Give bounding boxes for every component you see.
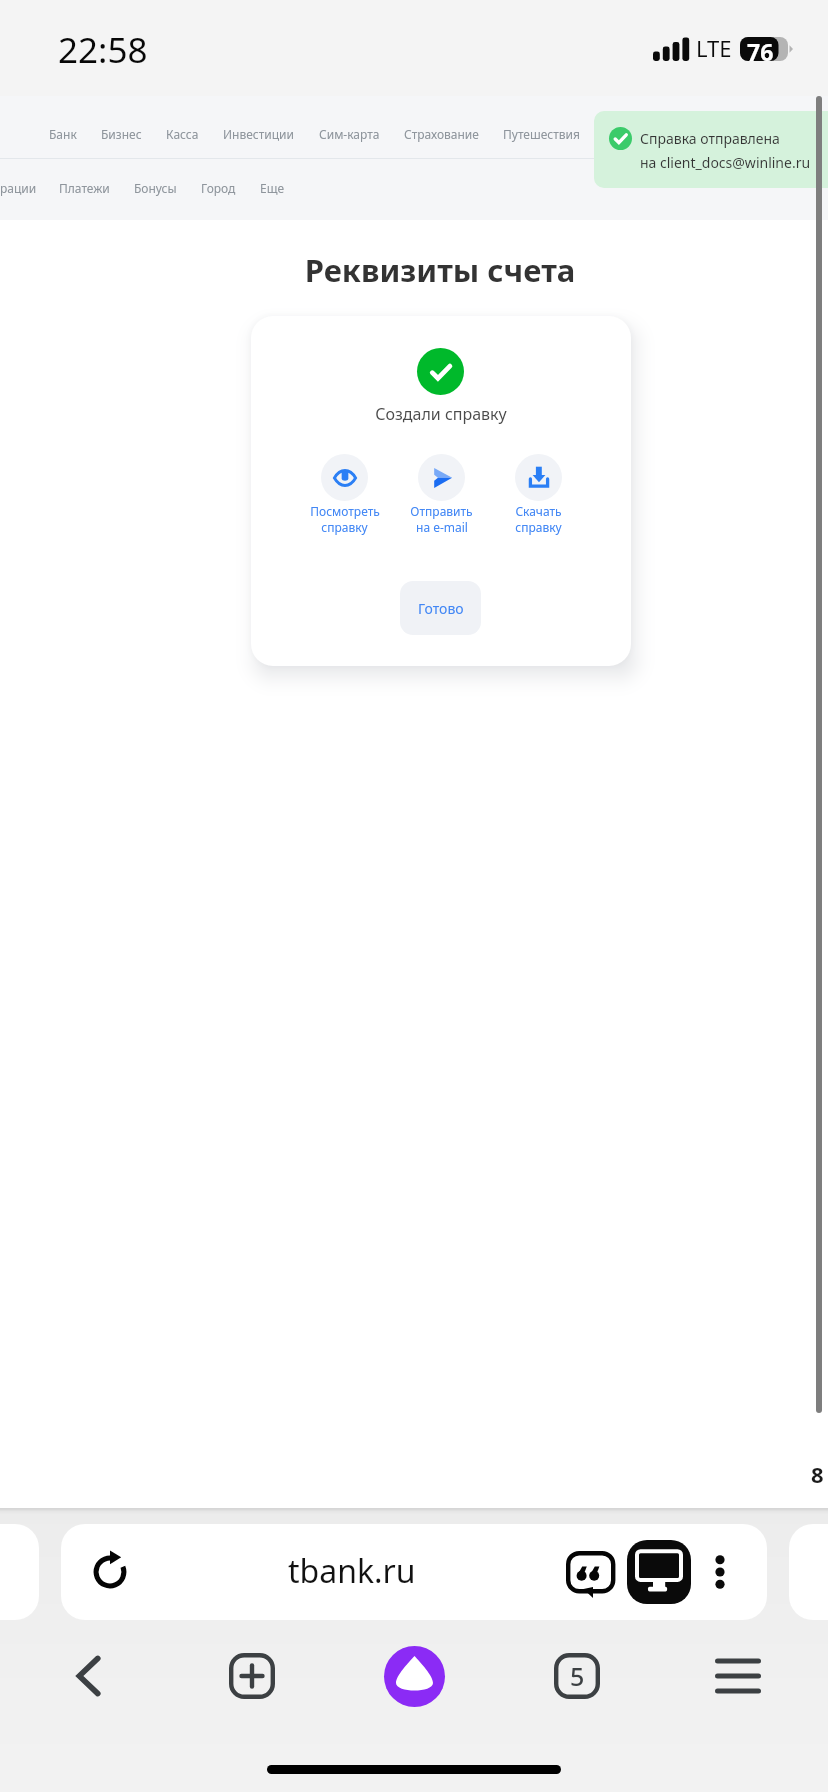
staticText: на client_docs@winline.ru — [640, 153, 811, 172]
staticText: 5 — [570, 1659, 585, 1693]
staticText: Справка отправлена — [640, 129, 780, 148]
staticText: Скачать — [515, 503, 562, 519]
staticText: Путешествия — [503, 126, 580, 142]
button[interactable]: Desktop version — [627, 1540, 691, 1604]
button[interactable]: Alice assistant — [379, 1641, 449, 1711]
button[interactable]: Город — [201, 180, 236, 196]
staticText: Бизнес — [101, 126, 142, 142]
button[interactable]: Посмотреть — [296, 454, 393, 535]
button[interactable]: Отправить — [393, 454, 490, 535]
button[interactable]: Бонусы — [134, 180, 177, 196]
button[interactable]: Next tab — [789, 1524, 828, 1620]
staticText: справку — [321, 519, 368, 535]
staticText: Банк — [49, 126, 77, 142]
button[interactable]: Menu — [703, 1641, 773, 1711]
button[interactable]: Банк — [49, 126, 77, 142]
button[interactable]: Еще — [260, 180, 285, 196]
staticText: Отправить — [410, 503, 473, 519]
button[interactable]: Previous tab — [0, 1524, 39, 1620]
button[interactable]: Reload — [81, 1543, 139, 1601]
button[interactable]: Инвестиции — [223, 126, 295, 142]
button[interactable]: рации — [0, 180, 37, 196]
staticText: справку — [515, 519, 562, 535]
staticText: LTE — [696, 33, 732, 63]
staticText: Касса — [166, 126, 199, 142]
staticText: Сим-карта — [319, 126, 380, 142]
staticText: 22:58 — [58, 26, 148, 74]
button[interactable]: Reload — [61, 1524, 767, 1620]
button[interactable]: Путешествия — [503, 126, 580, 142]
staticText: 76 — [747, 36, 774, 67]
button[interactable]: Страхование — [404, 126, 479, 142]
staticText: Страхование — [404, 126, 479, 142]
staticText: Создали справку — [251, 403, 631, 425]
button[interactable]: New tab — [217, 1641, 287, 1711]
staticText: Реквизиты счета — [52, 249, 828, 291]
staticText: рации — [0, 180, 37, 196]
button[interactable]: Reader mode — [565, 1550, 615, 1600]
staticText: Город — [201, 180, 236, 196]
button[interactable]: Back — [54, 1641, 124, 1711]
button[interactable]: Сим-карта — [319, 126, 380, 142]
button[interactable]: Бизнес — [101, 126, 142, 142]
button[interactable]: Tabs — [542, 1641, 612, 1711]
staticText: Готово — [418, 599, 464, 618]
button[interactable]: More options — [695, 1547, 745, 1597]
button[interactable]: Скачать — [490, 454, 587, 535]
button[interactable]: Готово — [400, 581, 481, 635]
staticText: Платежи — [59, 180, 110, 196]
button[interactable]: Справка отправлена — [594, 111, 828, 188]
staticText: Бонусы — [134, 180, 177, 196]
staticText: на e-mail — [416, 519, 468, 535]
staticText: 8 — [811, 1459, 824, 1489]
staticText: Посмотреть — [310, 503, 380, 519]
button[interactable]: Платежи — [59, 180, 110, 196]
staticText: Инвестиции — [223, 126, 295, 142]
button[interactable]: Касса — [166, 126, 199, 142]
staticText: tbank.ru — [288, 1549, 416, 1593]
staticText: Еще — [260, 180, 285, 196]
